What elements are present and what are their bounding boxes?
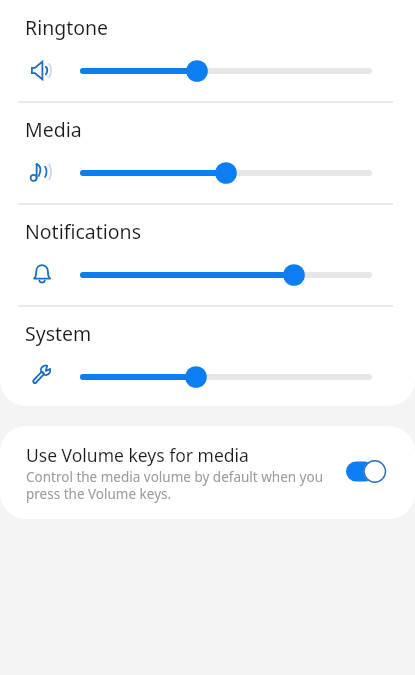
button[interactable]: Media volume slider bbox=[66, 152, 396, 194]
staticText: Use Volume keys for media bbox=[26, 443, 249, 467]
button[interactable]: Use Volume keys for media bbox=[0, 426, 415, 519]
button[interactable]: Ringtone volume slider bbox=[66, 50, 396, 92]
staticText: Notifications bbox=[25, 218, 141, 245]
button[interactable]: Notifications volume slider bbox=[66, 254, 396, 296]
staticText: Ringtone bbox=[25, 14, 109, 41]
staticText: Media bbox=[25, 116, 82, 143]
button[interactable]: Use Volume keys for media toggle bbox=[346, 460, 386, 483]
staticText: Control the media volume by default when… bbox=[26, 468, 324, 503]
staticText: System bbox=[25, 320, 92, 347]
button[interactable]: System volume slider bbox=[66, 356, 396, 398]
